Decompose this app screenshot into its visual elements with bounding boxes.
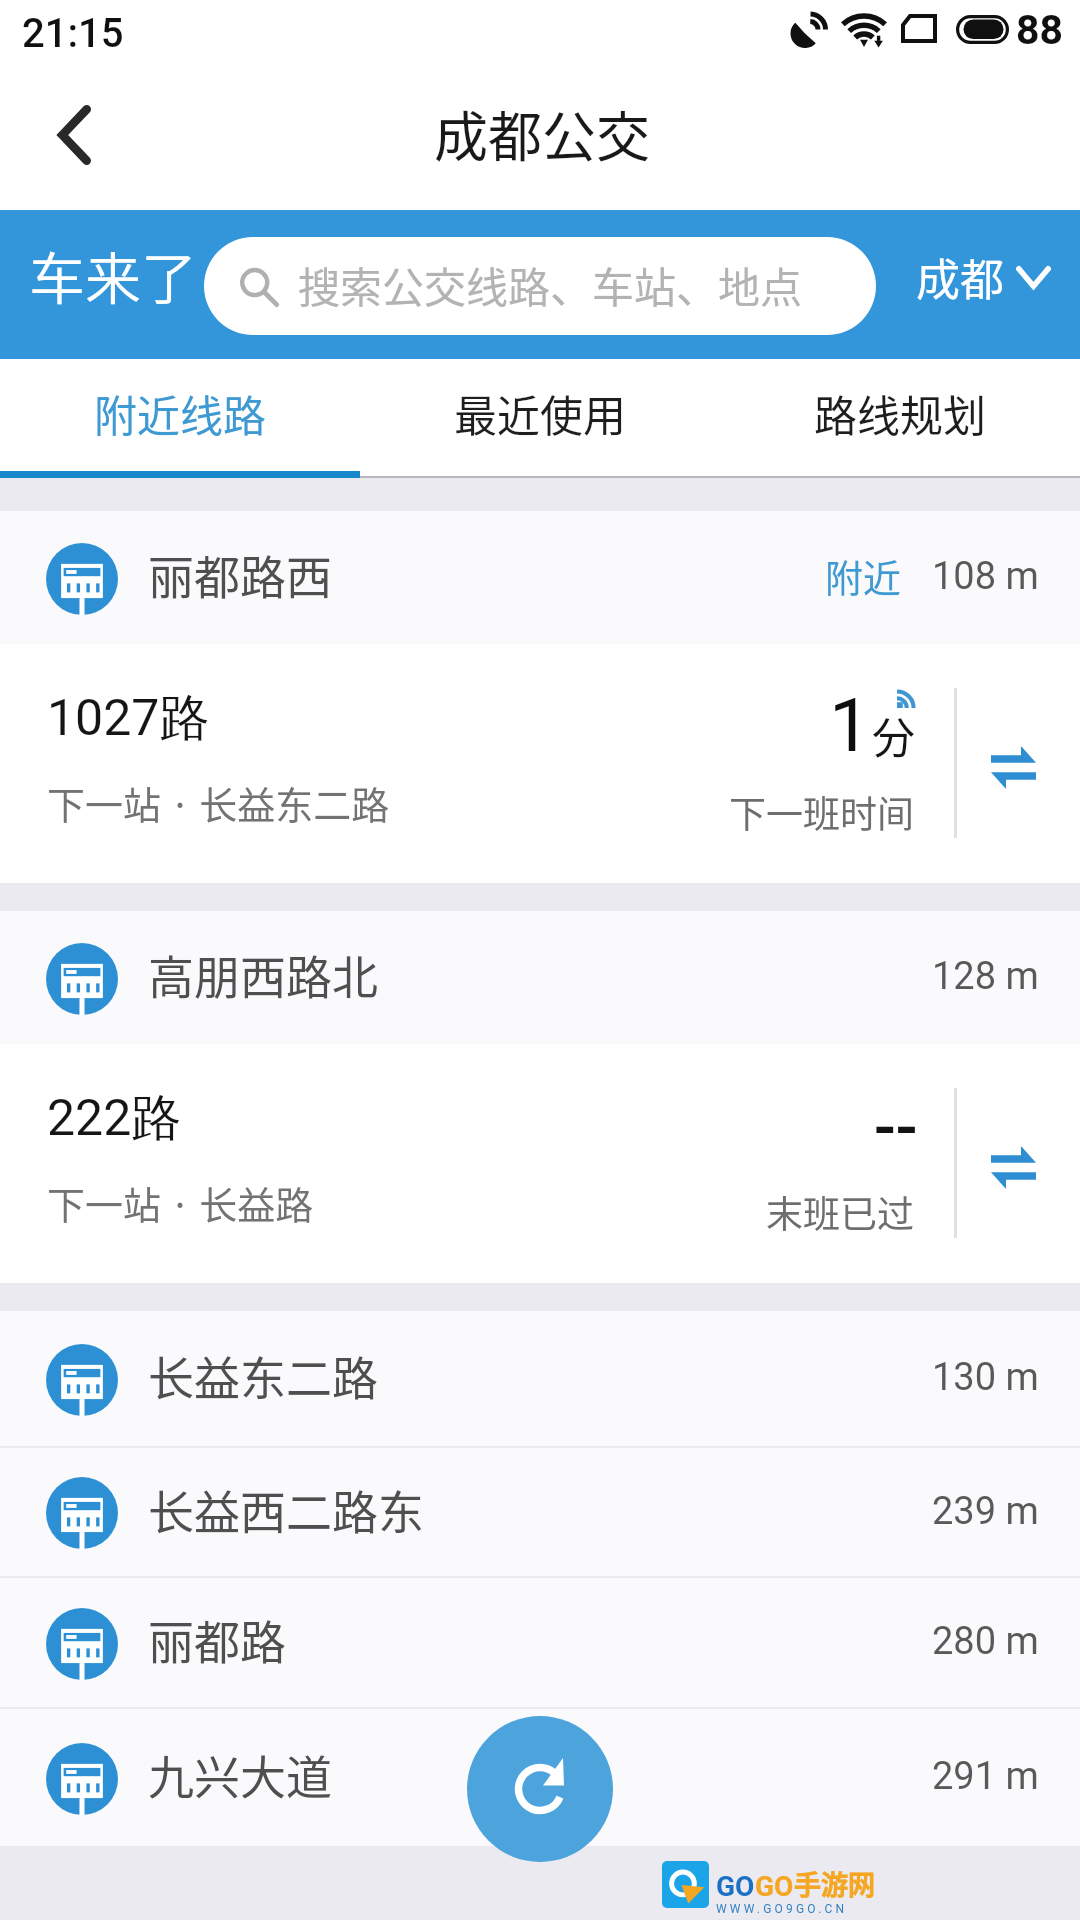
staticText: 九兴大道 xyxy=(148,1741,332,1808)
staticText: GO xyxy=(755,1870,794,1903)
button[interactable]: 长益西二路东 xyxy=(0,1448,1080,1576)
staticText: 丽都路 xyxy=(148,1606,286,1673)
staticText: 成都 xyxy=(916,245,1004,309)
staticText: WWW.GO9GO.CN xyxy=(716,1902,848,1916)
staticText: 291 m xyxy=(932,1754,1039,1799)
staticText: GO xyxy=(716,1870,755,1903)
button[interactable]: Back xyxy=(14,75,134,195)
staticText: 车来了 xyxy=(29,234,197,315)
staticText: 280 m xyxy=(932,1619,1039,1664)
staticText: 最近使用 xyxy=(454,382,626,444)
staticText: 239 m xyxy=(932,1489,1039,1534)
staticText: -- xyxy=(874,1089,918,1166)
staticText: 手游网 xyxy=(794,1864,875,1903)
staticText: 末班已过 xyxy=(420,1185,914,1239)
staticText: 长益东二路 xyxy=(148,1342,378,1409)
button[interactable]: 附近线路 xyxy=(0,359,360,478)
button[interactable]: 最近使用 xyxy=(360,359,720,478)
button[interactable]: 222路 xyxy=(0,1044,1080,1283)
button[interactable]: Switch direction xyxy=(963,1117,1063,1217)
staticText: 下一班时间 xyxy=(420,785,914,839)
button[interactable]: 搜索公交线路、车站、地点 xyxy=(204,237,876,335)
button[interactable]: 九兴大道 xyxy=(0,1709,1080,1846)
button[interactable]: 长益东二路 xyxy=(0,1311,1080,1446)
staticText: 高朋西路北 xyxy=(148,941,378,1008)
staticText: 长益西二路东 xyxy=(148,1476,424,1543)
button[interactable]: Switch direction xyxy=(963,717,1063,817)
staticText: 附近线路 xyxy=(94,382,266,444)
staticText: 128 m xyxy=(932,954,1039,999)
staticText: 分 xyxy=(872,704,915,766)
button[interactable]: 成都 xyxy=(900,227,1080,327)
button[interactable]: 丽都路 xyxy=(0,1578,1080,1707)
staticText: 21:15 xyxy=(22,10,124,57)
staticText: 222路 xyxy=(47,1087,182,1150)
staticText: 下一站 · 长益东二路 xyxy=(47,775,390,830)
staticText: 130 m xyxy=(932,1355,1039,1400)
staticText: 丽都路西 xyxy=(148,541,332,608)
button[interactable]: 路线规划 xyxy=(720,359,1080,478)
staticText: 搜索公交线路、车站、地点 xyxy=(298,254,803,315)
staticText: 路线规划 xyxy=(814,382,986,444)
staticText: 88 xyxy=(1016,6,1064,54)
staticText: 成都公交 xyxy=(434,94,650,172)
button[interactable]: 1027路 xyxy=(0,644,1080,883)
staticText: 1 xyxy=(829,682,871,769)
button[interactable]: 丽都路西 xyxy=(0,511,1080,644)
staticText: 108 m xyxy=(932,554,1039,599)
button[interactable]: Refresh xyxy=(467,1716,613,1862)
staticText: 附近 xyxy=(825,548,902,603)
staticText: 1027路 xyxy=(47,687,210,750)
button[interactable]: 高朋西路北 xyxy=(0,911,1080,1044)
staticText: 下一站 · 长益路 xyxy=(47,1175,314,1230)
